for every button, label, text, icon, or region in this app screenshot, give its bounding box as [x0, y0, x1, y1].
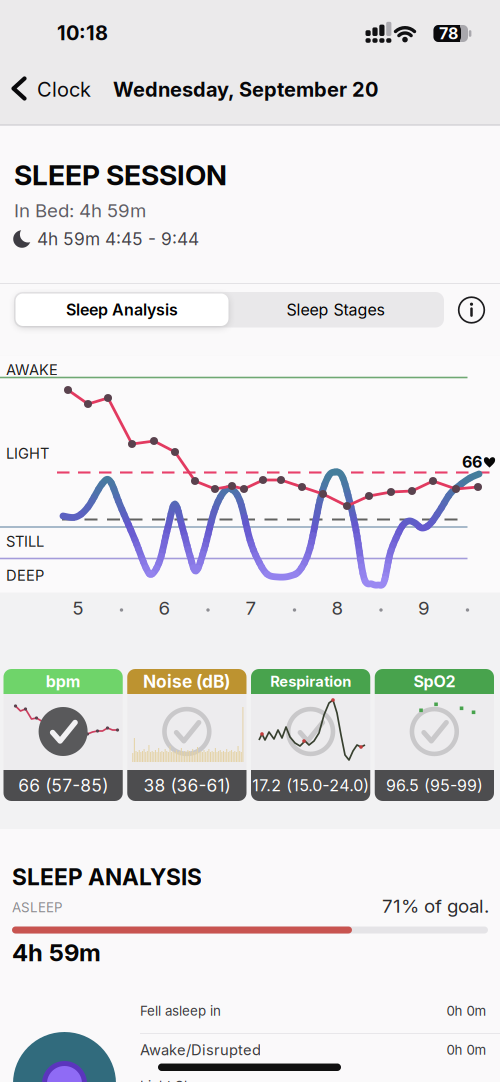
staticText: 7: [245, 597, 256, 619]
staticText: 17.2 (15.0-24.0): [252, 776, 369, 795]
button[interactable]: Awake/Disrupted: [140, 1032, 500, 1068]
button[interactable]: Back to Clock: [0, 65, 112, 114]
staticText: In Bed: 4h 59m: [14, 199, 146, 221]
button[interactable]: Info: [458, 297, 484, 323]
staticText: 8: [331, 597, 343, 619]
staticText: 4h 59m 4:45 - 9:44: [37, 229, 199, 249]
staticText: 5: [72, 597, 83, 619]
staticText: Sleep Analysis: [66, 300, 178, 319]
staticText: Noise (dB): [143, 671, 231, 692]
staticText: 4h 59m: [12, 938, 101, 967]
staticText: 78: [439, 24, 458, 43]
staticText: Awake/Disrupted: [140, 1041, 261, 1059]
staticText: Light Sleep: [140, 1078, 211, 1082]
staticText: 9: [418, 597, 430, 619]
staticText: SpO2: [413, 672, 455, 691]
button[interactable]: Sleep Stages: [228, 293, 442, 326]
button[interactable]: Sleep Analysis: [15, 293, 228, 326]
staticText: 0h 0m: [446, 1003, 486, 1019]
staticText: Fell asleep in: [140, 1003, 221, 1019]
staticText: DEEP: [6, 567, 44, 584]
staticText: SLEEP ANALYSIS: [12, 864, 202, 890]
staticText: 10:18: [57, 21, 108, 45]
staticText: ASLEEP: [12, 900, 63, 915]
staticText: 0h 0m: [446, 1042, 486, 1058]
staticText: Clock: [37, 78, 91, 101]
staticText: bpm: [46, 672, 81, 691]
button[interactable]: Respiration: [251, 669, 370, 801]
button[interactable]: SpO2: [375, 669, 494, 801]
staticText: Sleep Stages: [286, 300, 384, 319]
staticText: 38 (36-61): [143, 775, 230, 796]
staticText: Wednesday, September 20: [113, 78, 378, 101]
staticText: 6: [158, 597, 170, 619]
staticText: Respiration: [270, 673, 351, 690]
staticText: LIGHT: [6, 445, 49, 462]
staticText: 96.5 (95-99): [386, 776, 483, 795]
button[interactable]: Noise (dB): [127, 669, 246, 801]
staticText: 71% of goal.: [382, 895, 489, 917]
staticText: 66 (57-85): [18, 775, 108, 796]
staticText: STILL: [6, 533, 44, 550]
staticText: 66: [462, 453, 482, 471]
button[interactable]: bpm: [3, 669, 123, 801]
staticText: SLEEP SESSION: [14, 158, 227, 191]
staticText: AWAKE: [6, 361, 58, 379]
button[interactable]: Fell asleep in: [140, 992, 500, 1030]
